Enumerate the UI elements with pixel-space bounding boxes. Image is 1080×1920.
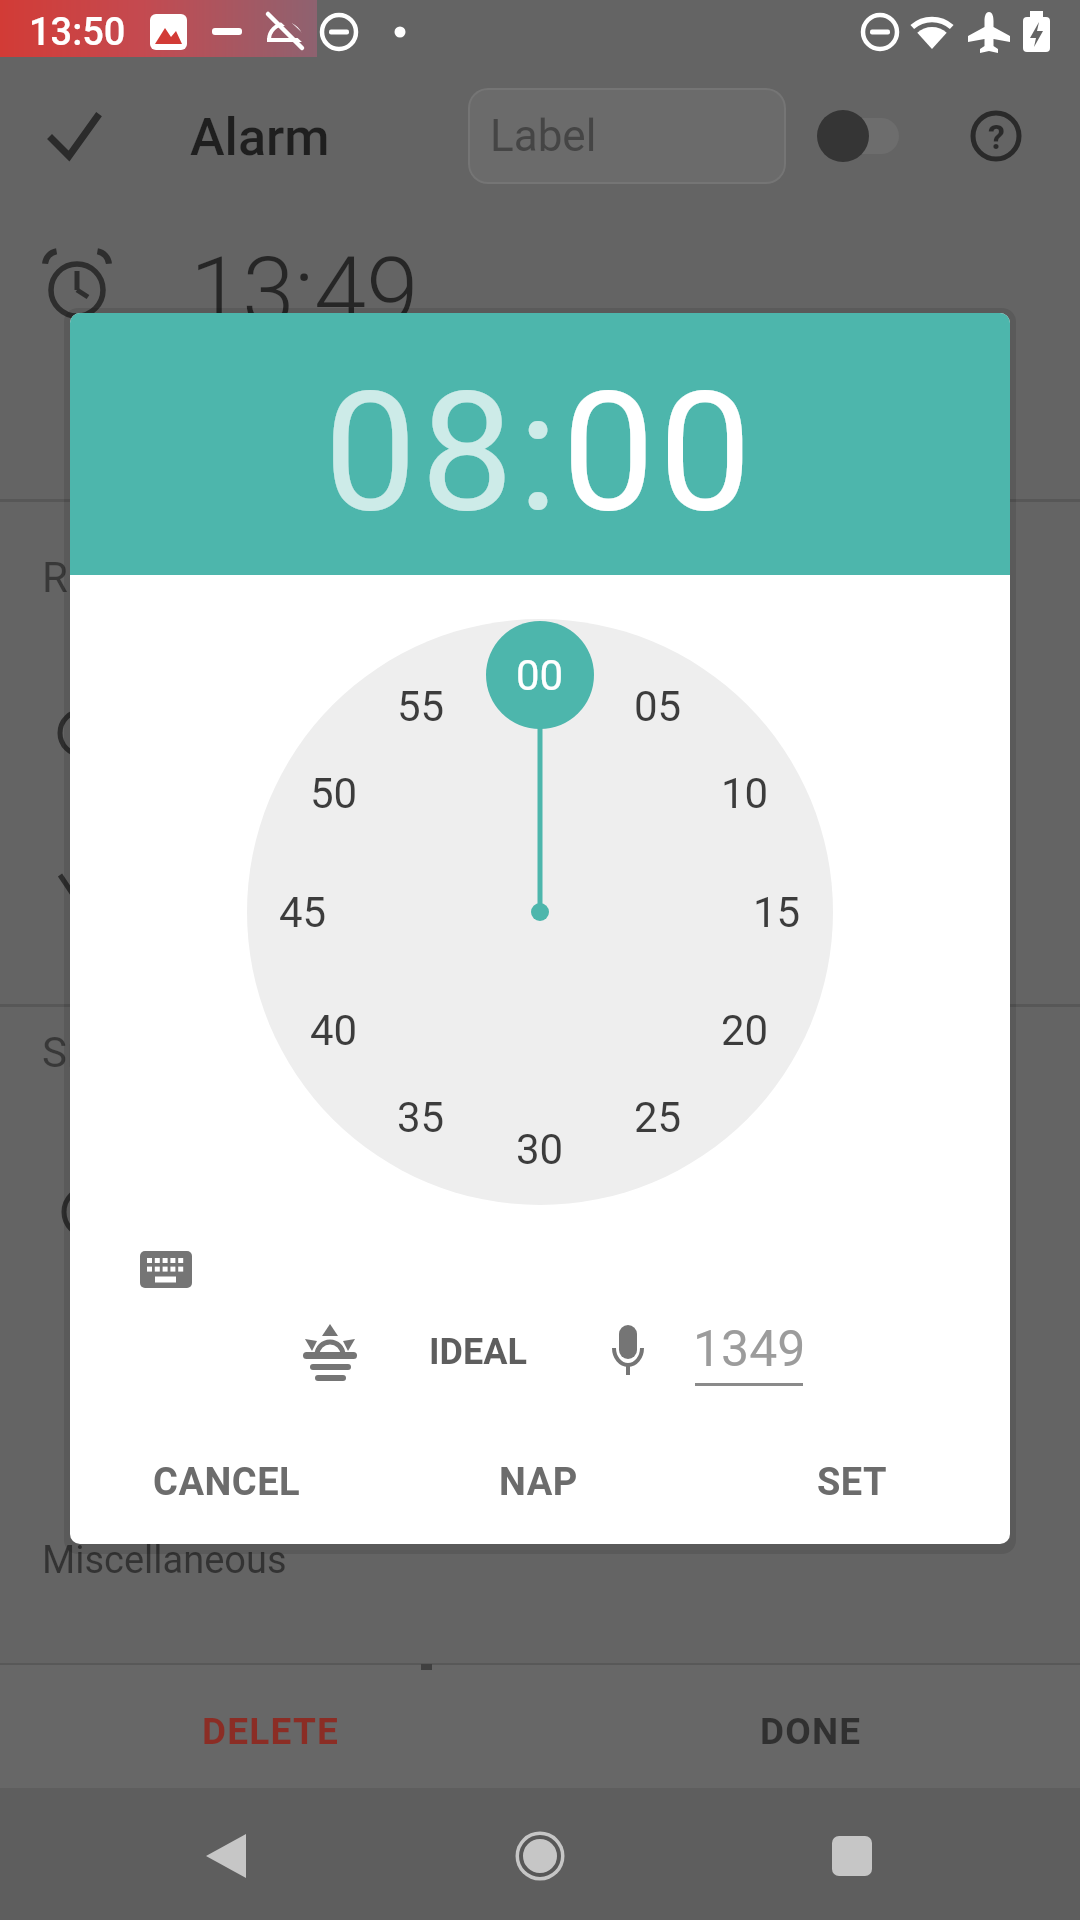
staticText: 10 bbox=[721, 769, 769, 818]
button[interactable]: 1349 bbox=[639, 1314, 859, 1384]
staticText: 30 bbox=[516, 1125, 564, 1174]
staticText: 15 bbox=[753, 888, 801, 937]
staticText: Snooze bbox=[42, 1028, 181, 1077]
staticText: 35 bbox=[397, 1093, 445, 1142]
staticText: Alarm bbox=[190, 107, 330, 168]
staticText: SET bbox=[817, 1460, 888, 1505]
button[interactable] bbox=[492, 1810, 587, 1905]
button[interactable]: Label bbox=[468, 88, 786, 184]
staticText: 05 bbox=[634, 682, 682, 731]
button[interactable] bbox=[810, 105, 905, 167]
button[interactable] bbox=[598, 1317, 658, 1387]
staticText: Miscellaneous bbox=[42, 1538, 287, 1583]
button[interactable] bbox=[180, 1810, 275, 1905]
button[interactable]: DONE bbox=[661, 1691, 961, 1771]
staticText: CANCEL bbox=[153, 1460, 301, 1505]
staticText: 50 bbox=[310, 769, 358, 818]
button[interactable]: CANCEL bbox=[107, 1437, 347, 1527]
button[interactable] bbox=[132, 1240, 202, 1300]
staticText: 45 bbox=[279, 888, 327, 937]
staticText: 00 bbox=[516, 651, 564, 700]
staticText: 13:50 bbox=[29, 10, 126, 55]
staticText: 40 bbox=[310, 1006, 358, 1055]
staticText: DELETE bbox=[202, 1710, 339, 1753]
button[interactable]: DELETE bbox=[120, 1691, 420, 1771]
staticText: 13:49 bbox=[190, 237, 419, 347]
staticText: 00 bbox=[562, 356, 756, 549]
button[interactable]: SET bbox=[752, 1437, 952, 1527]
staticText: IDEAL bbox=[429, 1331, 527, 1373]
staticText: Label bbox=[490, 110, 597, 162]
staticText: DONE bbox=[760, 1710, 862, 1753]
staticText: 1349 bbox=[693, 1320, 806, 1379]
staticText: 20 bbox=[721, 1006, 769, 1055]
staticText: ? bbox=[988, 117, 1005, 157]
button[interactable] bbox=[805, 1810, 900, 1905]
staticText: : bbox=[518, 356, 562, 549]
staticText: 25 bbox=[634, 1093, 682, 1142]
staticText: NAP bbox=[499, 1460, 578, 1505]
button[interactable]: NAP bbox=[438, 1437, 638, 1527]
staticText: 55 bbox=[397, 682, 445, 731]
staticText: Ringtone bbox=[42, 553, 208, 602]
staticText: 08 bbox=[324, 356, 518, 549]
